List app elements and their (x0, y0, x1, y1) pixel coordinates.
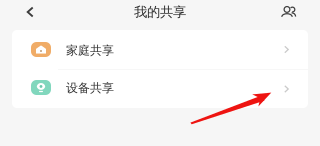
button[interactable]: 家庭共享 (12, 30, 308, 69)
button[interactable]: 设备共享 (12, 70, 308, 108)
staticText: 我的共享 (134, 4, 186, 20)
button[interactable]: Members (281, 0, 320, 24)
button[interactable]: Back (0, 0, 34, 24)
staticText: 设备共享 (66, 81, 114, 95)
staticText: 家庭共享 (66, 43, 114, 58)
